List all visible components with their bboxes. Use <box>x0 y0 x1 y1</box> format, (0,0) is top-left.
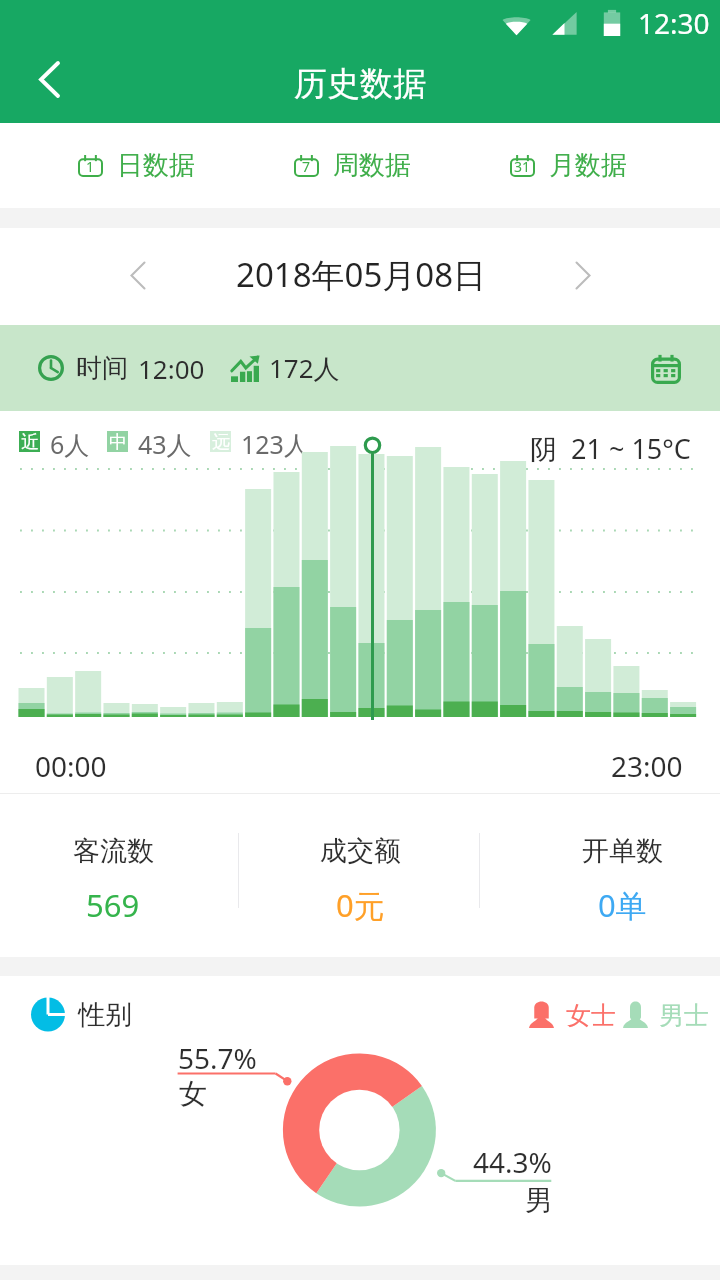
staticText: 44.3% <box>473 1143 552 1181</box>
staticText: 中 <box>109 431 127 452</box>
staticText: 女士 <box>566 1000 616 1031</box>
staticText: 569 <box>86 884 140 926</box>
button[interactable]: Back <box>10 46 90 123</box>
button[interactable]: 7 <box>244 123 460 208</box>
staticText: 2018年05月08日 <box>236 252 487 297</box>
staticText: 123人 <box>241 427 309 461</box>
staticText: 31 <box>514 157 531 176</box>
staticText: 近 <box>21 431 39 452</box>
button[interactable]: 开单数 <box>480 794 720 957</box>
staticText: 12:30 <box>638 4 710 42</box>
staticText: 客流数 <box>73 834 154 868</box>
staticText: 0元 <box>336 884 385 926</box>
staticText: 时间 <box>76 352 128 385</box>
staticText: 43人 <box>138 427 192 461</box>
staticText: 女 <box>179 1076 207 1111</box>
staticText: 0单 <box>598 884 647 926</box>
staticText: 月数据 <box>549 149 627 182</box>
button[interactable]: 1 <box>29 123 244 208</box>
staticText: 性别 <box>78 998 132 1032</box>
button[interactable]: Previous day <box>108 245 168 305</box>
staticText: 6人 <box>50 427 90 461</box>
staticText: 历史数据 <box>294 63 426 105</box>
staticText: 男士 <box>659 1000 709 1031</box>
staticText: 成交额 <box>320 834 401 868</box>
staticText: 23:00 <box>611 747 683 785</box>
staticText: 00:00 <box>35 747 107 785</box>
button[interactable]: 客流数 <box>0 794 238 957</box>
staticText: 7 <box>302 157 311 176</box>
staticText: 172人 <box>269 350 340 386</box>
staticText: 周数据 <box>333 149 411 182</box>
staticText: 男 <box>525 1183 553 1218</box>
staticText: 55.7% <box>178 1039 257 1077</box>
button[interactable]: 成交额 <box>239 794 479 957</box>
staticText: 阴 21 ~ 15°C <box>530 430 691 467</box>
staticText: 1 <box>86 157 95 176</box>
button[interactable]: 31 <box>460 123 676 208</box>
staticText: 开单数 <box>582 834 663 868</box>
staticText: 日数据 <box>117 149 195 182</box>
staticText: 远 <box>212 431 230 452</box>
button[interactable]: Calendar <box>642 344 690 392</box>
staticText: 12:00 <box>138 351 205 386</box>
button[interactable]: Next day <box>553 245 613 305</box>
